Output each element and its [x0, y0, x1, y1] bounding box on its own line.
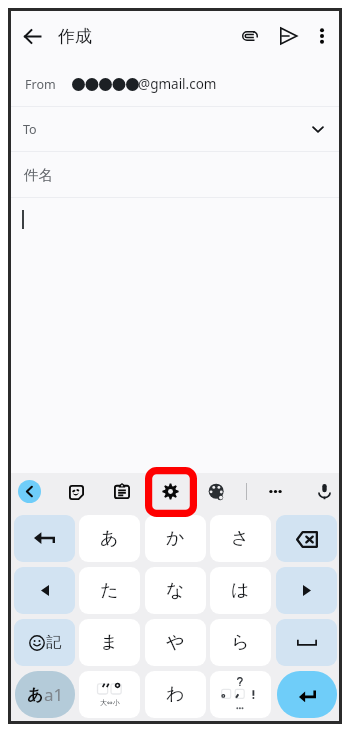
button[interactable]: More options	[260, 476, 290, 506]
button[interactable]	[277, 671, 337, 718]
staticText: な	[166, 579, 185, 602]
button[interactable]	[14, 515, 75, 562]
button[interactable]: Expand recipients	[302, 113, 334, 145]
button[interactable]: あ	[79, 515, 140, 562]
button[interactable]: From	[11, 62, 339, 106]
button[interactable]: な	[145, 567, 206, 614]
staticText: は	[231, 579, 250, 602]
button[interactable]	[210, 671, 271, 718]
button[interactable]: ま	[79, 619, 140, 666]
staticText: や	[166, 631, 185, 654]
button[interactable]: 記	[14, 619, 75, 666]
button[interactable]: Settings	[155, 476, 185, 506]
button[interactable]: 件名	[11, 152, 339, 197]
staticText: @gmail.com	[138, 75, 217, 93]
button[interactable]: や	[145, 619, 206, 666]
staticText: た	[100, 579, 119, 602]
button[interactable]: た	[79, 567, 140, 614]
button[interactable]: Send	[269, 17, 307, 55]
button[interactable]: More options	[304, 18, 340, 54]
staticText: From	[25, 76, 56, 93]
staticText: ら	[231, 631, 250, 654]
button[interactable]: は	[210, 567, 271, 614]
staticText: さ	[231, 527, 250, 550]
staticText: ま	[100, 631, 119, 654]
staticText: 大⇔小	[100, 698, 120, 707]
staticText: 記	[46, 633, 61, 652]
button[interactable]: Back	[12, 16, 52, 56]
button[interactable]: Clipboard	[107, 476, 137, 506]
staticText: 件名	[24, 166, 53, 184]
button[interactable]: To	[11, 107, 339, 151]
staticText: あ	[100, 527, 119, 550]
button[interactable]	[11, 198, 339, 473]
button[interactable]: ら	[210, 619, 271, 666]
button[interactable]: Theme	[201, 476, 231, 506]
staticText: わ	[166, 683, 185, 706]
button[interactable]	[276, 515, 337, 562]
button[interactable]: わ	[145, 671, 206, 718]
button[interactable]: Voice input	[309, 476, 339, 506]
button[interactable]: あ	[15, 671, 75, 718]
button[interactable]: 大⇔小	[79, 671, 140, 718]
button[interactable]: か	[145, 515, 206, 562]
button[interactable]	[14, 567, 75, 614]
button[interactable]: Stickers	[61, 477, 91, 507]
staticText: あ	[27, 685, 44, 705]
staticText: 作成	[58, 26, 92, 47]
button[interactable]	[276, 619, 337, 666]
button[interactable]: Attach file	[231, 17, 269, 55]
staticText: a1	[44, 683, 64, 706]
button[interactable]	[276, 567, 337, 614]
button[interactable]: さ	[210, 515, 271, 562]
staticText: To	[23, 121, 37, 138]
staticText: か	[166, 527, 185, 550]
button[interactable]: Previous keyboard	[18, 480, 41, 503]
